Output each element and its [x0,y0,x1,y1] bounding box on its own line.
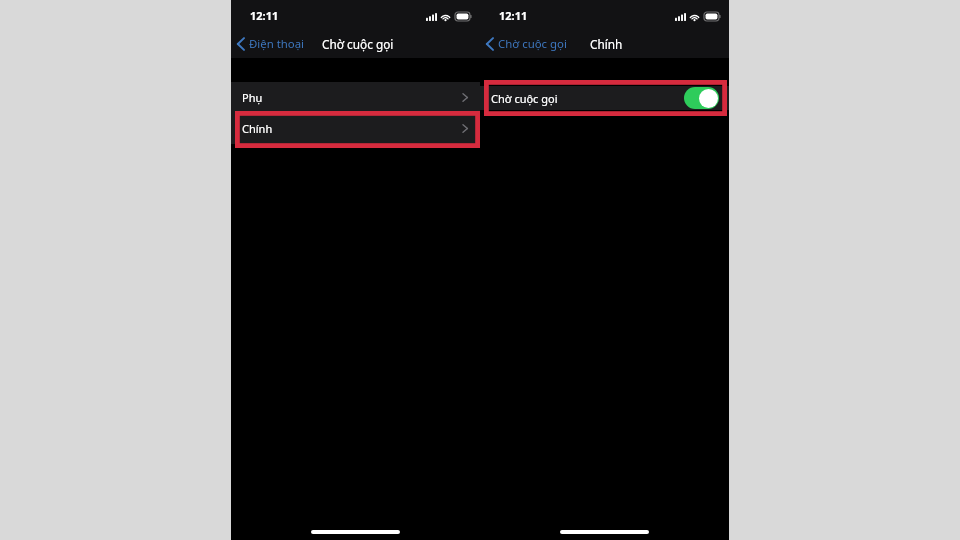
staticText: Chờ cuộc gọi [491,91,558,106]
staticText: 12:11 [499,8,528,23]
button[interactable]: Chính [231,112,480,144]
staticText: Chính [242,121,273,136]
button[interactable]: Back to Chờ cuộc gọi [480,36,571,52]
staticText: 12:11 [250,8,279,23]
button[interactable]: Phụ [231,82,480,112]
button[interactable]: Call waiting toggle, on [684,87,719,109]
button[interactable]: Chờ cuộc gọi [480,86,729,110]
staticText: Chính [590,36,623,52]
staticText: Chờ cuộc gọi [498,36,567,52]
staticText: Phụ [242,90,263,105]
button[interactable]: Back to Điện thoại [231,36,309,52]
staticText: Chờ cuộc gọi [322,36,394,52]
staticText: Điện thoại [249,36,305,52]
